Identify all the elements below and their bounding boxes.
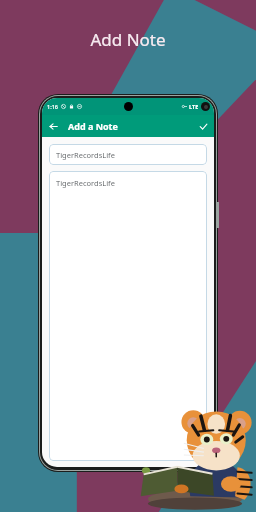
button[interactable]: Back [46,119,60,133]
button[interactable]: TigerRecordsLife [49,144,207,165]
staticText: LTE [189,103,199,110]
staticText: 1:16 [47,103,58,110]
button[interactable]: TigerRecordsLife [49,171,207,461]
staticText: TigerRecordsLife [56,150,115,160]
button[interactable]: Save [196,119,210,133]
staticText: Add Note [90,28,166,51]
staticText: TigerRecordsLife [56,178,115,188]
staticText: Add a Note [68,120,118,132]
